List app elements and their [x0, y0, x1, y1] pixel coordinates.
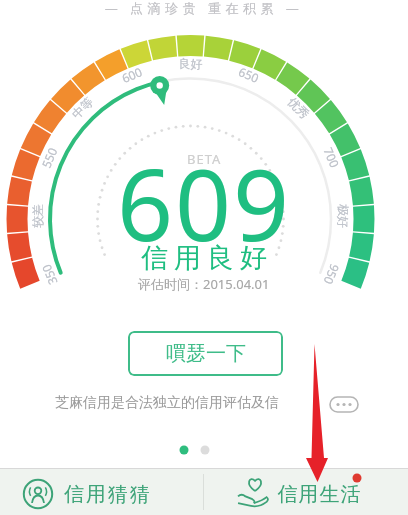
button[interactable]: 嘪瑟一下	[128, 331, 283, 376]
staticText: — 点滴珍贵 重在积累 —	[0, 0, 408, 17]
staticText: 609	[117, 136, 292, 269]
staticText: 芝麻信用是合法独立的信用评估及信	[55, 394, 279, 412]
staticText: 信用生活	[277, 482, 361, 507]
button[interactable]: 信用生活	[204, 468, 408, 515]
button[interactable]: 信用猜猜	[0, 468, 204, 515]
staticText: 嘪瑟一下	[166, 341, 246, 366]
staticText: BETA	[187, 150, 222, 168]
staticText: 评估时间：2015.04.01	[138, 275, 270, 293]
staticText: 信用良好	[138, 241, 270, 275]
staticText: 信用猜猜	[63, 482, 151, 507]
